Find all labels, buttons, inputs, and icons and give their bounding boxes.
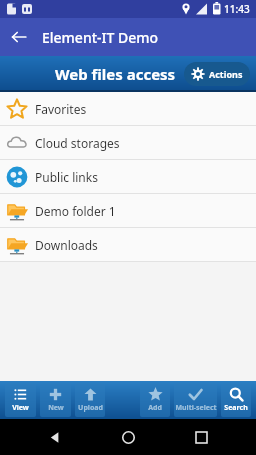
staticText: New bbox=[48, 403, 64, 413]
staticText: Favorites bbox=[35, 101, 87, 117]
button[interactable]: View bbox=[5, 383, 36, 417]
button[interactable]: Add bbox=[140, 383, 170, 417]
button[interactable]: Home bbox=[110, 419, 146, 455]
staticText: 11:43 bbox=[224, 2, 250, 16]
staticText: Search bbox=[224, 403, 248, 413]
button[interactable]: Upload bbox=[75, 383, 105, 417]
staticText: Public links bbox=[35, 169, 98, 185]
button[interactable]: Demo folder 1 bbox=[0, 194, 256, 227]
staticText: Upload bbox=[78, 403, 103, 413]
staticText: Actions bbox=[209, 68, 243, 80]
button[interactable]: Recents bbox=[183, 419, 219, 455]
button[interactable]: Favorites bbox=[0, 92, 256, 125]
button[interactable]: Downloads bbox=[0, 228, 256, 261]
button[interactable]: Multi-select bbox=[174, 383, 217, 417]
button[interactable]: New bbox=[40, 383, 71, 417]
staticText: Demo folder 1 bbox=[35, 203, 116, 219]
staticText: Downloads bbox=[35, 237, 98, 253]
staticText: Web files access bbox=[55, 64, 176, 84]
staticText: Cloud storages bbox=[35, 135, 120, 151]
button[interactable]: Actions bbox=[184, 62, 250, 86]
button[interactable]: Cloud storages bbox=[0, 126, 256, 159]
staticText: Add bbox=[148, 403, 162, 413]
button[interactable]: Search bbox=[221, 383, 251, 417]
staticText: View bbox=[12, 403, 29, 413]
staticText: Multi-select bbox=[175, 403, 217, 413]
button[interactable]: Back bbox=[0, 18, 38, 56]
button[interactable]: Back bbox=[37, 419, 73, 455]
staticText: Element-IT Demo bbox=[42, 28, 159, 47]
button[interactable]: Public links bbox=[0, 160, 256, 193]
